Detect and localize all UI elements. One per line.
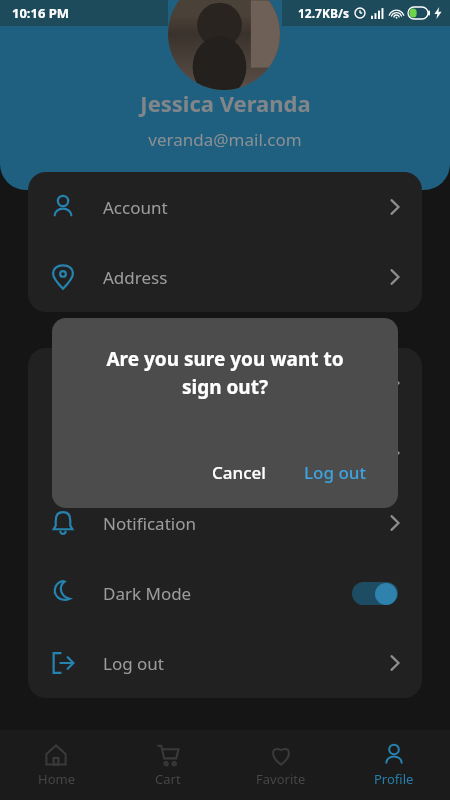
staticText: 12.7KB/s	[298, 5, 349, 21]
button[interactable]: Dark mode toggle	[352, 582, 398, 605]
button[interactable]: Home	[0, 730, 112, 800]
button[interactable]: Cancel	[202, 455, 276, 490]
staticText: 10:16 PM	[12, 4, 70, 22]
button[interactable]: Log out	[294, 455, 376, 490]
button[interactable]: Notification	[28, 488, 422, 558]
staticText: Log out	[103, 652, 164, 675]
staticText: Account	[103, 196, 168, 219]
staticText: Cart	[155, 770, 181, 788]
staticText: Home	[38, 770, 75, 788]
button[interactable]: Profile	[337, 730, 450, 800]
staticText: Log out	[304, 461, 366, 484]
button[interactable]: Dark Mode	[28, 558, 422, 628]
staticText: Address	[103, 266, 168, 289]
button[interactable]: Favorite	[224, 730, 337, 800]
button[interactable]: Payment	[28, 348, 422, 418]
staticText: Profile	[374, 770, 414, 788]
button[interactable]: Cart	[112, 730, 224, 800]
button[interactable]: My Orders	[28, 418, 422, 488]
staticText: veranda@mail.com	[148, 128, 302, 151]
staticText: Cancel	[212, 461, 266, 484]
staticText: Are you sure you want to sign out?	[74, 346, 376, 400]
staticText: Jessica Veranda	[140, 88, 311, 118]
staticText: Favorite	[256, 770, 306, 788]
button[interactable]: Address	[28, 242, 422, 312]
staticText: Dark Mode	[103, 582, 192, 605]
staticText: Notification	[103, 512, 196, 535]
button[interactable]: Account	[28, 172, 422, 242]
button[interactable]: Log out	[28, 628, 422, 698]
